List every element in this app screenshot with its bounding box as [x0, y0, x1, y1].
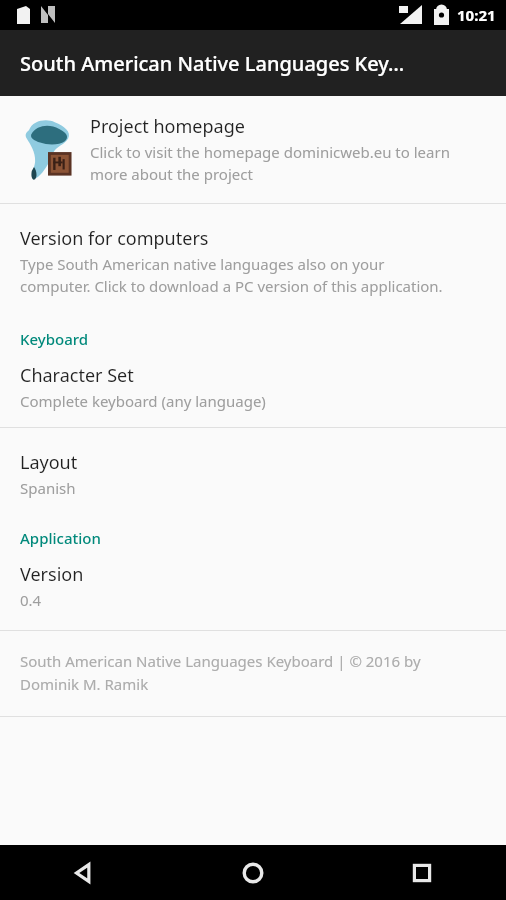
staticText: Complete keyboard (any language): [20, 391, 266, 411]
staticText: Spanish: [20, 478, 76, 498]
button[interactable]: Version for computers: [0, 204, 506, 317]
staticText: Keyboard: [20, 329, 89, 349]
staticText: Application: [20, 528, 101, 548]
staticText: Project homepage: [90, 114, 245, 139]
button[interactable]: Home: [168, 845, 337, 900]
staticText: 0.4: [20, 590, 42, 610]
button[interactable]: Character Set: [0, 363, 506, 427]
button[interactable]: Project homepage: [0, 96, 506, 203]
staticText: Layout: [20, 450, 78, 475]
staticText: Character Set: [20, 363, 134, 388]
staticText: South American Native Languages Key…: [20, 50, 405, 77]
button[interactable]: Layout: [0, 428, 506, 516]
button[interactable]: Recent apps: [337, 845, 506, 900]
staticText: Version: [20, 562, 84, 587]
staticText: Version for computers: [20, 226, 209, 251]
staticText: 10:21: [457, 5, 496, 25]
button[interactable]: Version: [0, 562, 506, 630]
staticText: South American Native Languages Keyboard…: [20, 651, 421, 694]
button[interactable]: Back: [0, 845, 168, 900]
staticText: Click to visit the homepage dominicweb.e…: [90, 142, 450, 185]
staticText: Type South American native languages als…: [20, 254, 443, 297]
